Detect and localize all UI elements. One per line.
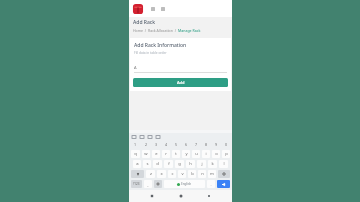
button[interactable]: Manage Rack: [178, 28, 201, 33]
button[interactable]: Rack Allocation: [148, 28, 173, 33]
staticText: 9: [215, 142, 218, 147]
button[interactable]: p: [222, 150, 230, 158]
staticText: q: [134, 151, 137, 157]
button[interactable]: w: [142, 150, 150, 158]
button[interactable]: o: [212, 150, 220, 158]
button[interactable]: l: [219, 160, 228, 168]
button[interactable]: z: [146, 170, 155, 178]
button[interactable]: j: [197, 160, 206, 168]
staticText: h: [189, 161, 192, 167]
button[interactable]: Home: [133, 28, 143, 33]
staticText: m: [210, 171, 214, 177]
staticText: ,: [147, 182, 149, 187]
button[interactable]: v: [178, 170, 186, 178]
button[interactable]: Home: [175, 190, 187, 202]
button[interactable]: 3: [151, 140, 161, 149]
button[interactable]: Recents: [203, 190, 215, 202]
button[interactable]: 9: [211, 140, 221, 149]
button[interactable]: Emoji: [154, 180, 162, 188]
staticText: l: [223, 161, 225, 167]
button[interactable]: Keyboard tool 0: [131, 134, 137, 140]
staticText: 4: [165, 142, 168, 147]
staticText: 2: [145, 142, 148, 147]
staticText: 0: [225, 142, 228, 147]
button[interactable]: a: [133, 160, 141, 168]
button[interactable]: Add: [133, 78, 228, 87]
staticText: i: [205, 151, 207, 157]
button[interactable]: c: [168, 170, 176, 178]
button[interactable]: Keyboard tool 3: [155, 134, 161, 140]
staticText: w: [144, 151, 148, 157]
staticText: n: [201, 171, 204, 177]
button[interactable]: App logo: [132, 3, 144, 15]
button[interactable]: s: [143, 160, 151, 168]
staticText: 5: [175, 142, 178, 147]
staticText: y: [185, 151, 188, 157]
staticText: g: [178, 161, 181, 167]
button[interactable]: u: [192, 150, 200, 158]
button[interactable]: h: [186, 160, 195, 168]
staticText: u: [195, 151, 198, 157]
button[interactable]: x: [157, 170, 166, 178]
button[interactable]: k: [208, 160, 217, 168]
staticText: /: [173, 28, 178, 33]
button[interactable]: g: [175, 160, 184, 168]
button[interactable]: A: [134, 65, 227, 73]
button[interactable]: Keyboard tool 2: [147, 134, 153, 140]
button[interactable]: Backspace: [218, 170, 230, 178]
button[interactable]: 8: [201, 140, 211, 149]
button[interactable]: 1: [130, 140, 141, 149]
button[interactable]: 0: [221, 140, 231, 149]
staticText: 3: [155, 142, 158, 147]
staticText: p: [225, 151, 228, 157]
staticText: Fill data in table order: [134, 51, 167, 55]
staticText: /: [143, 28, 148, 33]
staticText: English: [181, 182, 192, 186]
staticText: a: [136, 161, 139, 167]
button[interactable]: n: [198, 170, 206, 178]
staticText: t: [175, 151, 177, 157]
button[interactable]: Keyboard tool 1: [139, 134, 145, 140]
button[interactable]: ,: [144, 180, 152, 188]
button[interactable]: Back: [146, 190, 158, 202]
button[interactable]: i: [202, 150, 210, 158]
button[interactable]: d: [153, 160, 162, 168]
button[interactable]: y: [182, 150, 190, 158]
button[interactable]: 4: [161, 140, 171, 149]
button[interactable]: 7: [191, 140, 201, 149]
staticText: 8: [205, 142, 208, 147]
button[interactable]: Shift: [131, 170, 144, 178]
button[interactable]: Toolbar action: [149, 5, 156, 12]
staticText: Add Rack: [133, 19, 156, 26]
button[interactable]: r: [162, 150, 170, 158]
staticText: s: [146, 161, 149, 167]
staticText: 1: [134, 142, 137, 147]
staticText: b: [191, 171, 194, 177]
button[interactable]: t: [172, 150, 180, 158]
staticText: Add: [177, 80, 185, 85]
staticText: c: [171, 171, 174, 177]
staticText: 6: [185, 142, 188, 147]
button[interactable]: Enter: [217, 180, 230, 188]
staticText: d: [156, 161, 159, 167]
staticText: r: [165, 151, 167, 157]
button[interactable]: Toolbar action: [159, 5, 166, 12]
staticText: f: [168, 161, 170, 167]
button[interactable]: m: [208, 170, 216, 178]
staticText: o: [215, 151, 218, 157]
button[interactable]: b: [188, 170, 196, 178]
button[interactable]: 2: [141, 140, 151, 149]
button[interactable]: q: [131, 150, 140, 158]
button[interactable]: f: [164, 160, 173, 168]
button[interactable]: ?123: [131, 180, 142, 188]
staticText: A: [134, 65, 137, 70]
staticText: ?123: [133, 182, 140, 186]
button[interactable]: English: [164, 180, 205, 188]
button[interactable]: e: [152, 150, 160, 158]
button[interactable]: 6: [181, 140, 191, 149]
button[interactable]: 5: [171, 140, 181, 149]
staticText: e: [155, 151, 158, 157]
staticText: .: [210, 182, 212, 187]
staticText: x: [160, 171, 163, 177]
